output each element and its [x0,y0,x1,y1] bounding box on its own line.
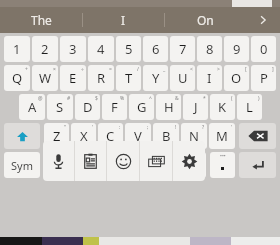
staticText: & [175,95,179,102]
button[interactable]: 3 [60,36,86,62]
button[interactable]: 7 [170,36,195,62]
staticText: 5 [125,40,133,58]
staticText: E [69,69,77,87]
button[interactable]: 4 [88,36,114,62]
staticText: W [39,69,52,87]
staticText: B [162,127,171,145]
button[interactable]: Shift [4,123,40,149]
button[interactable]: V [125,123,151,149]
staticText: F [111,98,118,116]
staticText: ÷ [81,66,84,73]
button[interactable]: 1 [4,36,30,62]
staticText: 4 [97,40,105,58]
button[interactable]: Settings [173,141,205,181]
button[interactable]: A [19,94,45,120]
button[interactable]: Backspace [239,123,276,149]
button[interactable]: D [75,94,100,120]
staticText: Z [53,127,61,145]
button[interactable]: 5 [116,36,141,62]
button[interactable]: X [71,123,96,149]
staticText: I [207,69,212,87]
button[interactable]: 0 [251,36,276,62]
staticText: G [137,98,147,116]
staticText: + [25,66,28,73]
button[interactable]: Sym [4,152,40,178]
staticText: × [53,66,56,73]
staticText: ] [272,66,274,73]
staticText: 3 [69,40,77,58]
staticText: T [125,69,133,87]
staticText: I [121,12,126,28]
staticText: S [56,98,64,116]
staticText: < [190,66,193,73]
button[interactable]: F [102,94,127,120]
button[interactable]: Voice input [43,141,74,181]
staticText: A [28,98,37,116]
button[interactable]: 2 [32,36,58,62]
staticText: _ [163,66,166,73]
staticText: ' [231,124,233,131]
button[interactable]: K [210,94,235,120]
button[interactable]: R [88,65,114,91]
button[interactable]: U [170,65,195,91]
staticText: ! [175,124,177,131]
staticText: Y [152,69,160,87]
button[interactable]: G [129,94,154,120]
button[interactable]: I [83,7,164,33]
staticText: , [89,158,92,173]
staticText: M [216,127,228,145]
staticText: P [260,69,268,87]
staticText: H [164,98,174,116]
button[interactable]: The [0,7,82,33]
button[interactable]: S [47,94,73,120]
button[interactable]: Q [4,65,30,91]
button[interactable]: Period [210,152,235,178]
staticText: " [64,124,67,131]
button[interactable]: More suggestions [246,7,280,33]
button[interactable]: E [60,65,86,91]
button[interactable]: B [153,123,179,149]
button[interactable]: English(US) [107,152,206,178]
staticText: 2 [41,40,49,58]
button[interactable]: Y [143,65,168,91]
button[interactable]: Z [44,123,69,149]
staticText: ••• [220,153,226,160]
button[interactable]: L [237,94,262,120]
staticText: Q [12,69,23,87]
button[interactable]: J [183,94,208,120]
staticText: @ [38,95,43,102]
button[interactable]: M [209,123,235,149]
staticText: C [106,127,115,145]
staticText: ^ [149,95,152,102]
button[interactable]: H [156,94,181,120]
staticText: # [67,95,71,102]
staticText: ? [202,124,205,131]
button[interactable]: I [197,65,222,91]
staticText: R [97,69,106,87]
button[interactable]: Voice input [44,152,74,178]
button[interactable]: O [224,65,249,91]
staticText: % [120,95,125,102]
button[interactable]: 8 [197,36,222,62]
button[interactable]: Enter [239,152,276,178]
button[interactable]: P [251,65,276,91]
staticText: ' [92,124,94,131]
button[interactable]: , [78,152,103,178]
button[interactable]: C [98,123,123,149]
button[interactable]: N [181,123,207,149]
button[interactable]: On [165,7,246,33]
button[interactable]: Clipboard [75,141,106,181]
button[interactable]: W [32,65,58,91]
staticText: = [109,66,112,73]
button[interactable]: 6 [143,36,168,62]
staticText: O [231,69,242,87]
staticText: 9 [233,40,241,58]
button[interactable]: 9 [224,36,249,62]
staticText: The [31,12,52,28]
staticText: On [197,12,214,28]
staticText: English(US) [133,159,181,171]
staticText: [ [245,66,247,73]
button[interactable]: Floating keyboard [140,141,172,181]
button[interactable]: T [116,65,141,91]
button[interactable]: Emoji [107,141,139,181]
